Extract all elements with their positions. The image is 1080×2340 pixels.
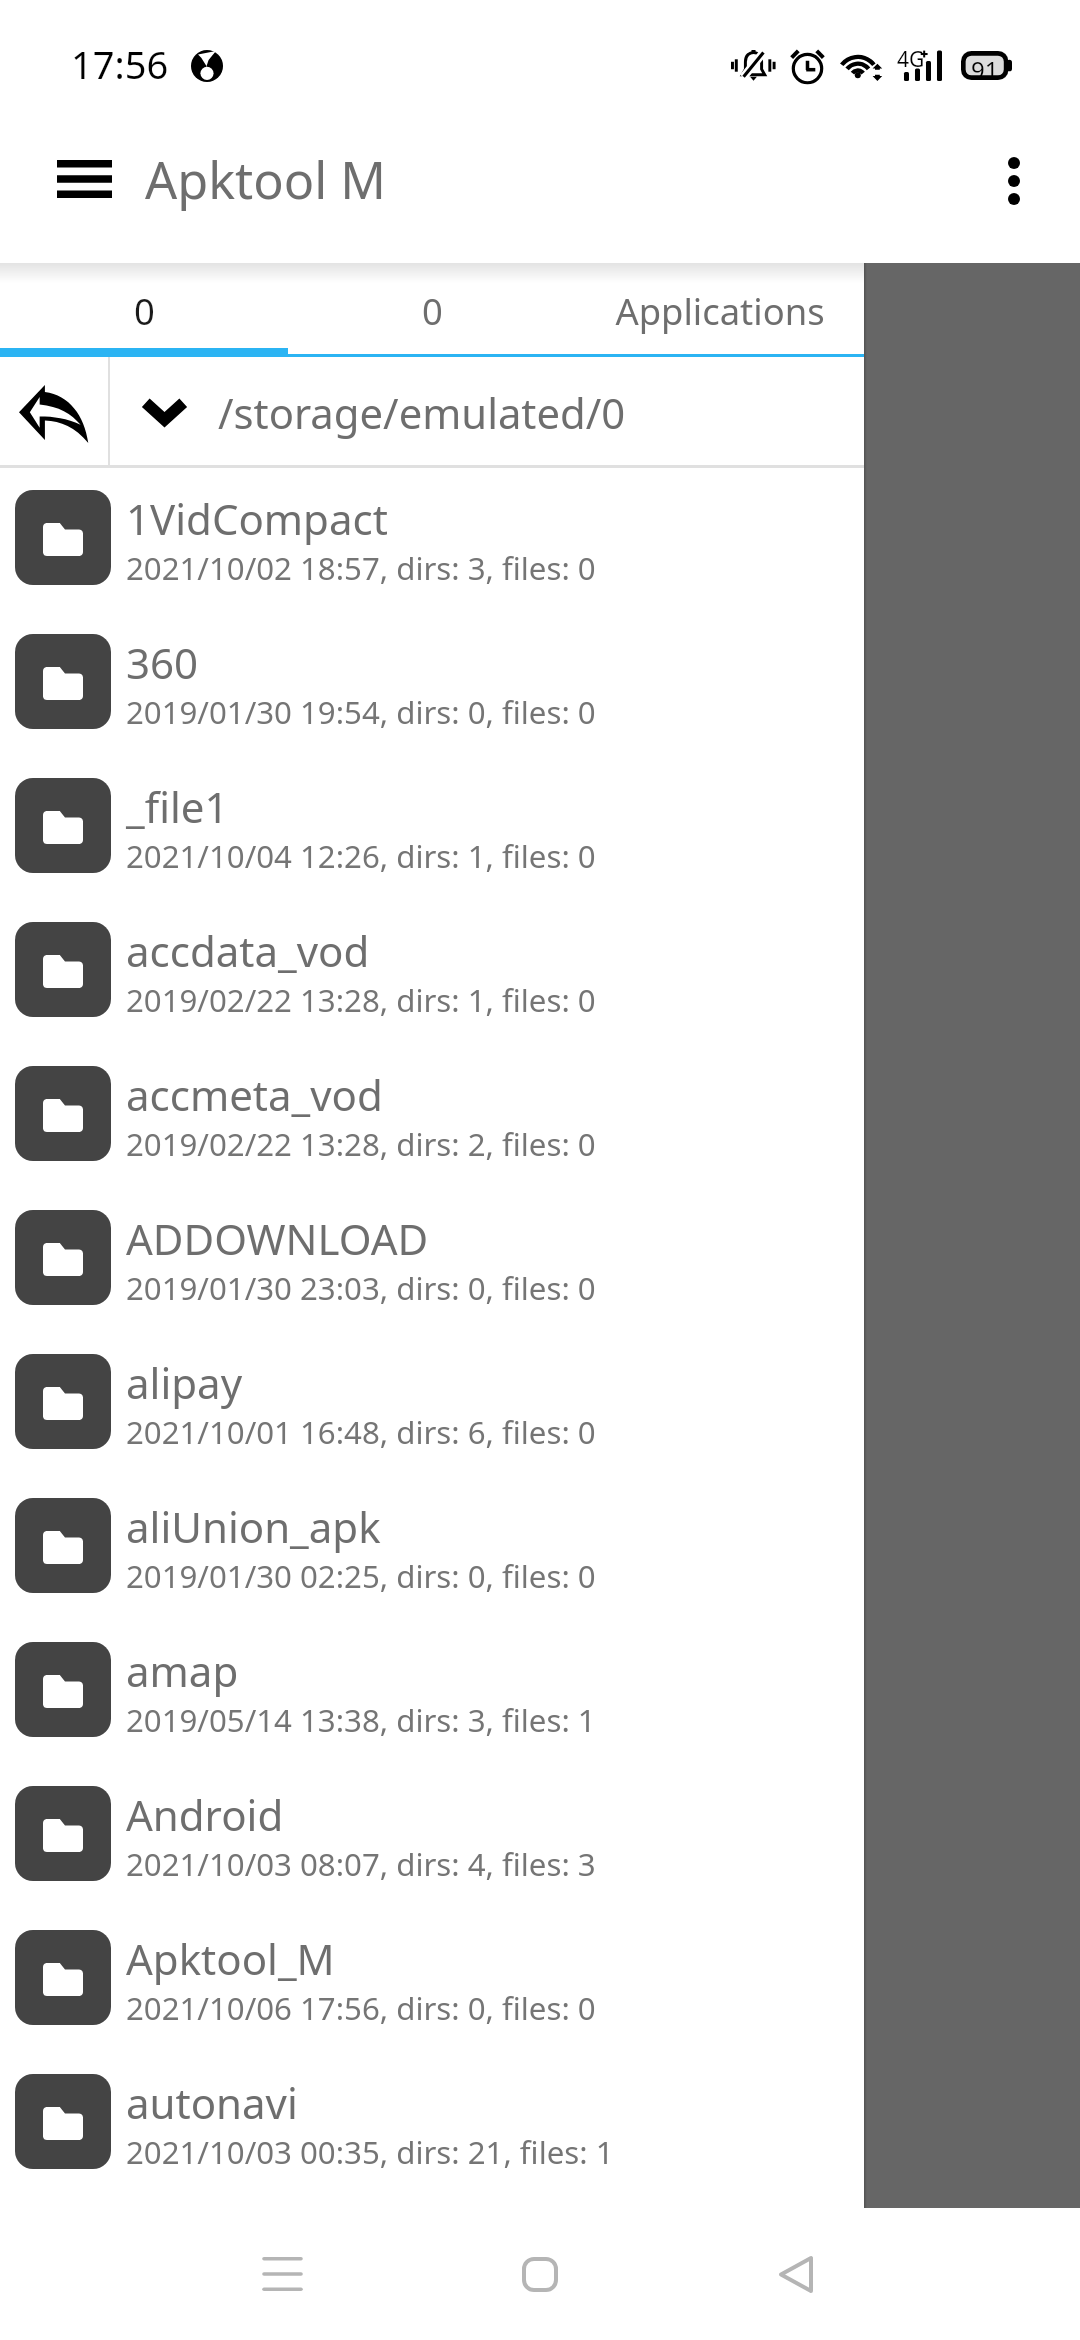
- button[interactable]: aliUnion_apk: [0, 1476, 1080, 1620]
- staticText: 0: [134, 286, 155, 336]
- button[interactable]: 0: [288, 263, 576, 357]
- button[interactable]: autonavi: [0, 2052, 1080, 2196]
- button[interactable]: More options: [959, 126, 1069, 236]
- staticText: Android: [126, 1786, 284, 1843]
- staticText: /storage/emulated/0: [218, 384, 626, 441]
- button[interactable]: Home: [480, 2214, 600, 2334]
- staticText: Apktool M: [145, 145, 387, 214]
- button[interactable]: Applications: [576, 263, 864, 357]
- staticText: accmeta_vod: [126, 1066, 383, 1123]
- staticText: Applications: [615, 286, 825, 336]
- button[interactable]: Android: [0, 1764, 1080, 1908]
- button[interactable]: accdata_vod: [0, 900, 1080, 1044]
- button[interactable]: accmeta_vod: [0, 1044, 1080, 1188]
- staticText: 2019/01/30 19:54, dirs: 0, files: 0: [126, 691, 596, 733]
- staticText: 2021/10/03 00:35, dirs: 21, files: 1: [126, 2131, 614, 2173]
- staticText: 91: [971, 53, 999, 86]
- button[interactable]: ADDOWNLOAD: [0, 1188, 1080, 1332]
- button[interactable]: 360: [0, 612, 1080, 756]
- button[interactable]: alipay: [0, 1332, 1080, 1476]
- staticText: 2019/02/22 13:28, dirs: 2, files: 0: [126, 1123, 596, 1165]
- staticText: aliUnion_apk: [126, 1498, 381, 1555]
- staticText: 4G: [897, 45, 925, 74]
- staticText: 2021/10/02 18:57, dirs: 3, files: 0: [126, 547, 596, 589]
- staticText: alipay: [126, 1354, 243, 1411]
- staticText: 360: [126, 634, 199, 691]
- staticText: 2021/10/03 08:07, dirs: 4, files: 3: [126, 1843, 596, 1885]
- button[interactable]: _file1: [0, 756, 1080, 900]
- staticText: 2021/10/01 16:48, dirs: 6, files: 0: [126, 1411, 596, 1453]
- button[interactable]: Open navigation drawer: [29, 124, 139, 234]
- button[interactable]: amap: [0, 1620, 1080, 1764]
- staticText: 2019/05/14 13:38, dirs: 3, files: 1: [126, 1699, 596, 1741]
- staticText: 2019/02/22 13:28, dirs: 1, files: 0: [126, 979, 596, 1021]
- staticText: Apktool_M: [126, 1930, 335, 1987]
- staticText: ADDOWNLOAD: [126, 1210, 429, 1267]
- button[interactable]: Back: [736, 2214, 856, 2334]
- staticText: 2021/10/06 17:56, dirs: 0, files: 0: [126, 1987, 596, 2029]
- staticText: 1VidCompact: [126, 490, 388, 547]
- staticText: _file1: [126, 778, 229, 835]
- button[interactable]: /storage/emulated/0: [218, 357, 1080, 468]
- button[interactable]: 1VidCompact: [0, 468, 1080, 612]
- staticText: 0: [422, 286, 443, 336]
- button[interactable]: Go up: [0, 357, 108, 468]
- button[interactable]: Apktool_M: [0, 1908, 1080, 2052]
- staticText: 2019/01/30 02:25, dirs: 0, files: 0: [126, 1555, 596, 1597]
- staticText: autonavi: [126, 2074, 298, 2131]
- staticText: amap: [126, 1642, 239, 1699]
- button[interactable]: Show path menu: [110, 357, 218, 468]
- staticText: 17:56: [71, 38, 169, 90]
- button[interactable]: 0: [0, 263, 288, 357]
- button[interactable]: Recent apps: [222, 2214, 342, 2334]
- staticText: accdata_vod: [126, 922, 370, 979]
- staticText: 2019/01/30 23:03, dirs: 0, files: 0: [126, 1267, 596, 1309]
- staticText: 2021/10/04 12:26, dirs: 1, files: 0: [126, 835, 596, 877]
